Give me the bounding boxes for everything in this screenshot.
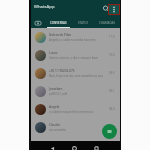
button[interactable]: +55 11 98232-075	[31, 64, 120, 82]
staticText: 08:47	[109, 107, 115, 111]
button[interactable]: Recentes	[92, 144, 100, 150]
button[interactable]: CHAMADAS	[94, 17, 120, 28]
button[interactable]: Pesquisar	[100, 3, 111, 14]
button[interactable]: Claudio	[31, 118, 120, 136]
staticText: Galera da Pilao	[49, 33, 72, 37]
staticText: Vamos ontem, o dia e sempre bom	[49, 56, 99, 60]
button[interactable]: Mais opcoes	[109, 5, 119, 14]
staticText: 09:58	[109, 71, 115, 75]
button[interactable]: Galera da Pilao	[31, 28, 120, 46]
staticText: CHAMADAS	[99, 21, 115, 25]
button[interactable]: Inicio	[70, 144, 78, 150]
button[interactable]: CONVERSAS	[45, 17, 72, 28]
staticText: CONVERSAS	[50, 21, 67, 25]
staticText: pdf014-1.pdf	[49, 92, 68, 96]
button[interactable]: Angela	[31, 100, 120, 118]
staticText: Jonathan	[49, 87, 63, 91]
staticText: 08:05	[109, 125, 115, 129]
staticText: +55 11 98232-075	[49, 69, 75, 73]
staticText: Nao, hoje nao da, mas amanha eu pos	[49, 74, 103, 78]
button[interactable]: Camera	[31, 17, 45, 28]
staticText: 09:12	[109, 89, 115, 93]
staticText: Claudio	[49, 123, 61, 127]
staticText: Angela: o caderno ainda nao tem	[49, 38, 96, 42]
staticText: 11:05	[109, 35, 115, 39]
button[interactable]: STATUS	[72, 17, 94, 28]
button[interactable]: Jonathan	[31, 82, 120, 100]
staticText: Lucas	[49, 51, 58, 55]
staticText: o cabelo esta perfeito mesmo a	[49, 110, 94, 114]
staticText: 10:42	[109, 53, 115, 57]
button[interactable]: Voltar	[48, 144, 56, 150]
staticText: Angela	[49, 105, 60, 109]
staticText: ate amanha	[49, 128, 66, 132]
button[interactable]: Lucas	[31, 46, 120, 64]
button[interactable]: Nova conversa	[102, 124, 117, 139]
staticText: WhatsApp	[34, 4, 55, 10]
staticText: STATUS	[78, 21, 89, 25]
